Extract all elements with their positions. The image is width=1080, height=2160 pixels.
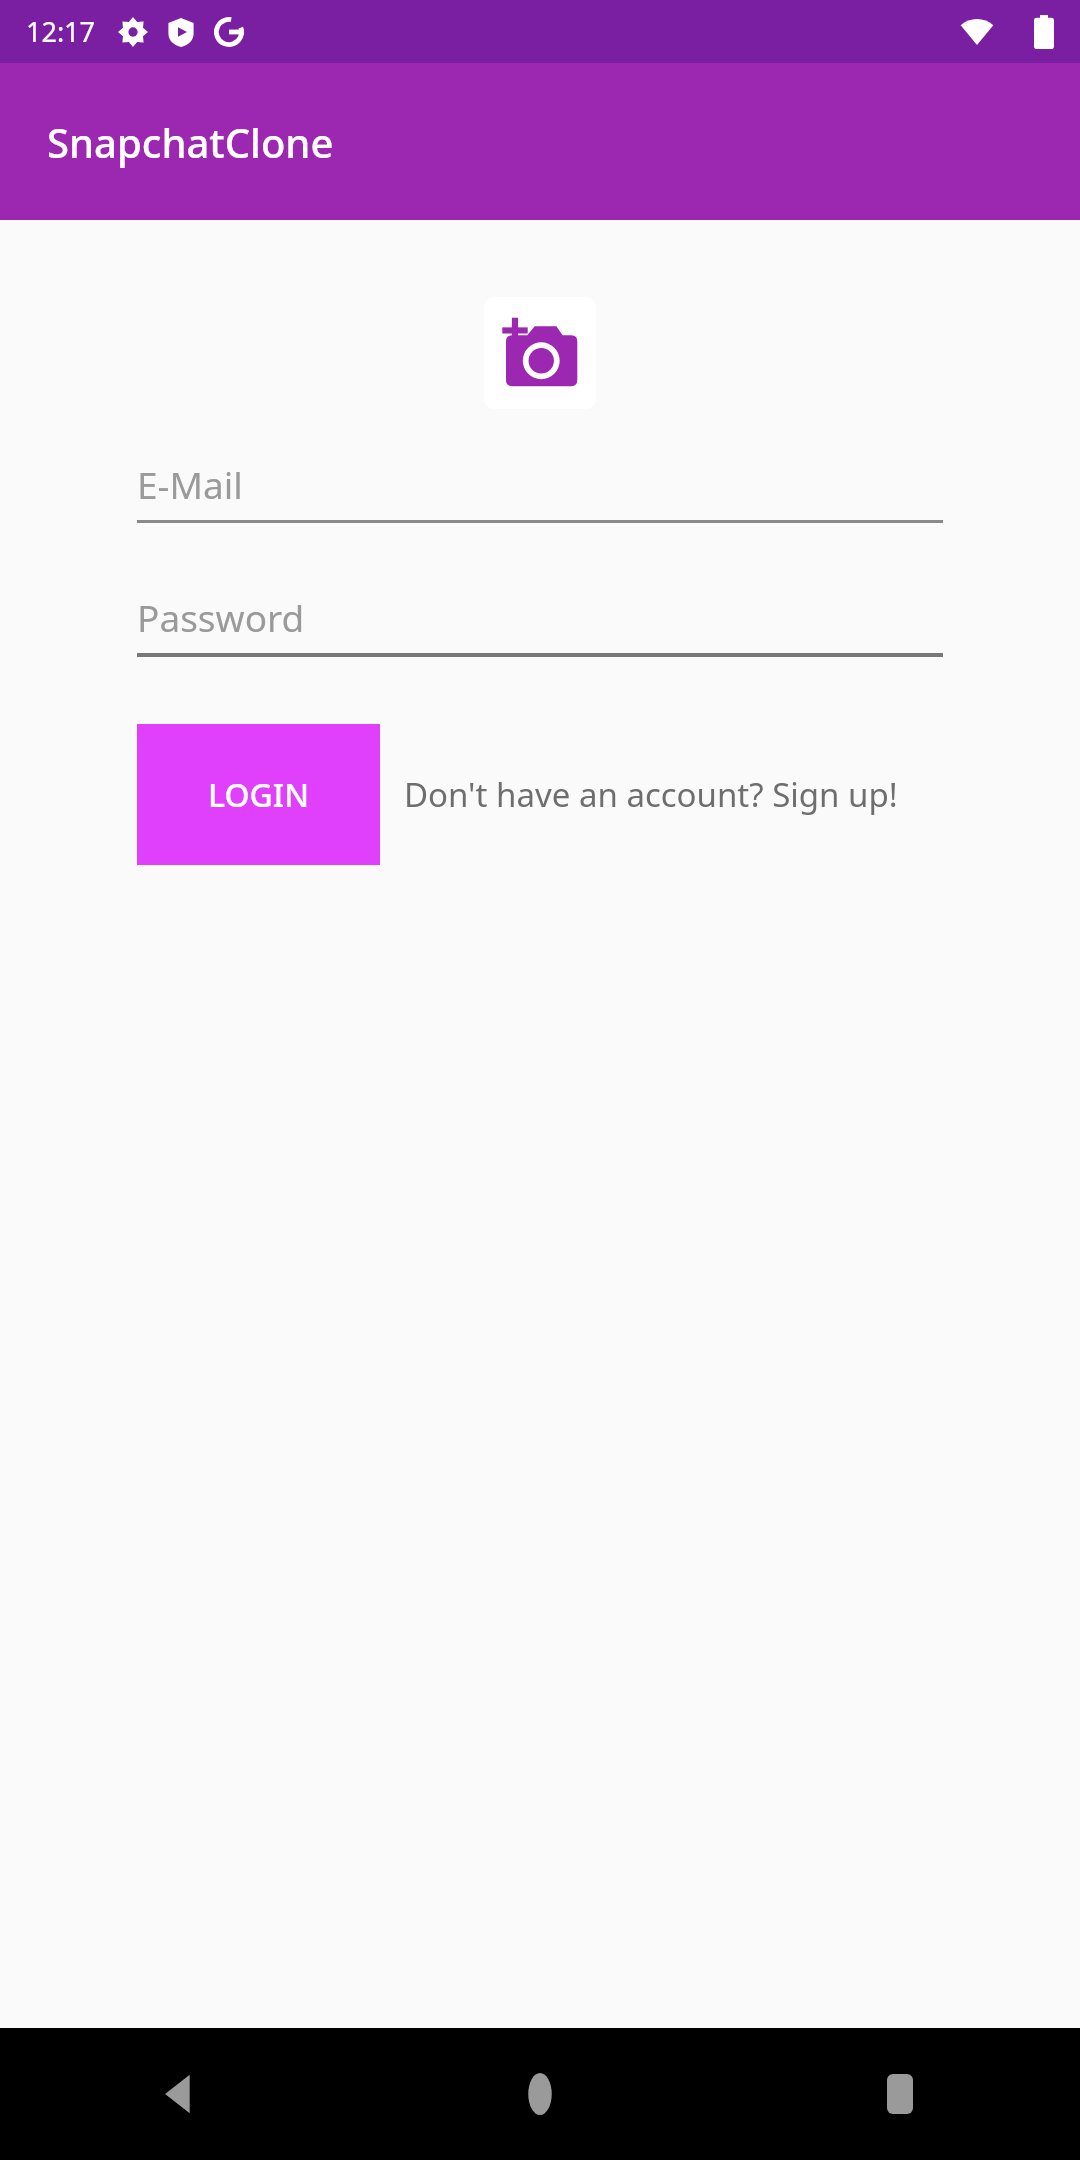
staticText: Password [137, 592, 305, 642]
button[interactable]: Home [360, 2028, 720, 2160]
button[interactable]: Password [137, 580, 943, 657]
staticText: Don't have an account? Sign up! [404, 772, 898, 817]
button[interactable]: Recent apps [720, 2028, 1080, 2160]
staticText: SnapchatClone [47, 115, 334, 169]
button[interactable]: Back [0, 2028, 360, 2160]
button[interactable]: E-Mail [137, 447, 943, 523]
staticText: 12:17 [26, 13, 96, 50]
button[interactable]: LOGIN [137, 724, 380, 865]
staticText: LOGIN [208, 773, 309, 817]
button[interactable]: App logo [484, 297, 596, 409]
button[interactable]: Don't have an account? Sign up! [404, 772, 898, 817]
staticText: E-Mail [137, 459, 243, 509]
